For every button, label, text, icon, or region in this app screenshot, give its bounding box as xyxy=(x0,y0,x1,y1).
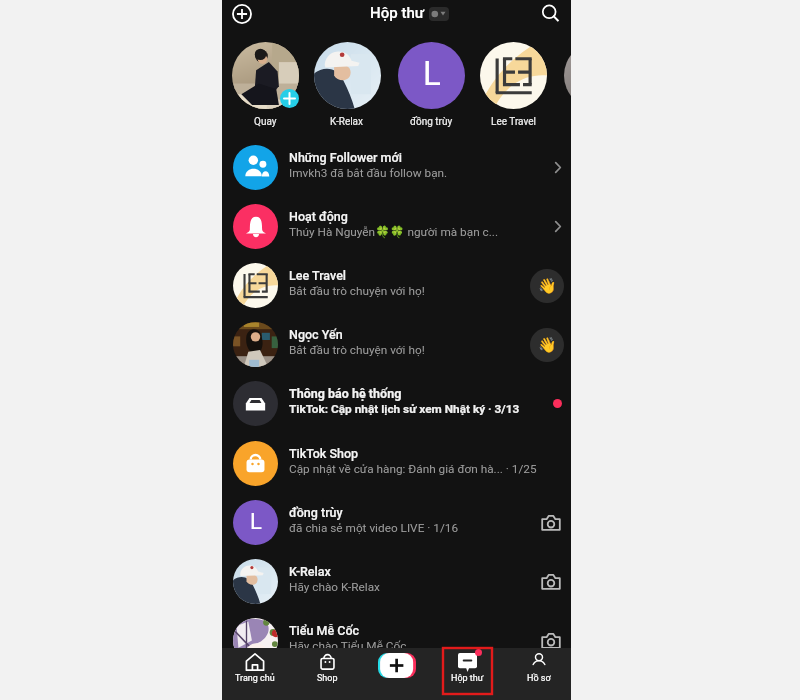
staticText: Quay xyxy=(254,116,277,128)
button[interactable]: Những Follower mới xyxy=(222,138,571,197)
staticText: Hãy chào K-Relax xyxy=(289,580,380,594)
staticText: Ngọc Yến xyxy=(289,327,343,342)
staticText: đồng trùy xyxy=(410,116,453,128)
button[interactable]: Hoạt động xyxy=(222,197,571,256)
button[interactable]: Camera xyxy=(536,626,565,655)
button[interactable] xyxy=(224,40,306,128)
button[interactable]: Tiểu Mễ Cốc xyxy=(222,611,571,670)
staticText: đã chia sẻ một video LIVE · 1/16 xyxy=(289,521,459,535)
button[interactable]: Open xyxy=(542,152,571,183)
button[interactable]: Hộp thư xyxy=(443,648,492,694)
staticText: đồng trùy xyxy=(289,505,343,520)
button[interactable]: Shop xyxy=(303,648,351,696)
staticText: Cập nhật về cửa hàng: Đánh giá đơn hà...… xyxy=(289,462,537,476)
button[interactable] xyxy=(472,40,554,128)
staticText: Hãy chào Tiểu Mễ Cốc xyxy=(289,639,407,653)
button[interactable]: Camera xyxy=(536,567,565,596)
staticText: L xyxy=(423,54,441,93)
staticText: Hộp thư xyxy=(370,4,424,22)
button[interactable]: Switch account xyxy=(429,7,449,21)
staticText: 👋 xyxy=(538,336,557,354)
staticText: K-Relax xyxy=(330,116,364,128)
staticText: Hoạt động xyxy=(289,209,348,224)
button[interactable]: Search xyxy=(537,0,562,25)
button[interactable]: K-Relax xyxy=(222,552,571,611)
staticText: Trang chủ xyxy=(235,673,275,684)
button[interactable]: Open xyxy=(542,211,571,242)
button[interactable]: Lee Travel xyxy=(222,256,571,315)
staticText: Thông báo hệ thống xyxy=(289,386,402,401)
staticText: Imvkh3 đã bắt đầu follow bạn. xyxy=(289,166,448,180)
button[interactable]: Create xyxy=(378,653,416,678)
staticText: Những Follower mới xyxy=(289,150,402,165)
staticText: Thúy Hà Nguyễn🍀🍀 người mà bạn c... xyxy=(289,225,499,239)
button[interactable]: L xyxy=(222,493,571,552)
staticText: Hộp thư xyxy=(451,673,484,684)
staticText: K-Relax xyxy=(289,564,331,579)
button[interactable]: TikTok Shop xyxy=(222,434,571,493)
button[interactable]: Thông báo hệ thống xyxy=(222,374,571,433)
staticText: Bắt đầu trò chuyện với họ! xyxy=(289,343,425,357)
button[interactable]: Add xyxy=(230,2,254,26)
button[interactable]: Ngọc Yến xyxy=(222,315,571,374)
button[interactable]: Camera xyxy=(536,508,565,537)
staticText: Hồ sơ xyxy=(527,673,551,684)
staticText: Bắt đầu trò chuyện với họ! xyxy=(289,284,425,298)
button[interactable]: Wave xyxy=(530,269,564,303)
staticText: Shop xyxy=(317,673,338,684)
button[interactable]: Hồ sơ xyxy=(515,648,563,696)
button[interactable] xyxy=(306,40,388,128)
staticText: TikTok: Cập nhật lịch sử xem Nhật ký · 3… xyxy=(289,402,520,416)
button[interactable]: L xyxy=(390,40,472,128)
staticText: 👋 xyxy=(538,277,557,295)
staticText: Lee Travel xyxy=(491,116,536,128)
staticText: Tiểu Mễ Cốc xyxy=(289,623,360,638)
button[interactable]: Wave xyxy=(530,328,564,362)
staticText: Lee Travel xyxy=(289,268,347,283)
staticText: L xyxy=(250,509,262,535)
button[interactable]: Trang chủ xyxy=(231,648,279,696)
staticText: TikTok Shop xyxy=(289,446,359,461)
